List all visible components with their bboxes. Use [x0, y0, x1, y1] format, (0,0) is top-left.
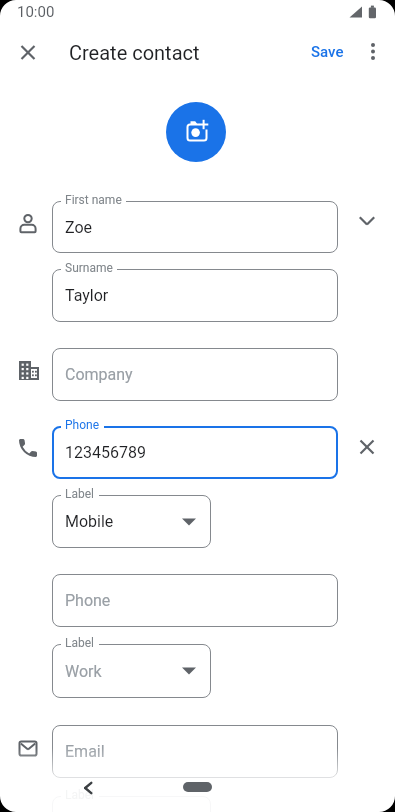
button[interactable]: Work [52, 644, 211, 698]
staticText: Label [65, 788, 95, 802]
button[interactable]: 123456789 [52, 426, 338, 479]
staticText: Work [65, 662, 102, 681]
staticText: Phone [65, 591, 111, 610]
button[interactable] [166, 102, 226, 162]
button[interactable]: Email [52, 725, 338, 778]
button[interactable]: Phone [52, 574, 338, 627]
staticText: Label [65, 487, 95, 501]
button[interactable] [8, 32, 48, 72]
staticText: Label [65, 636, 95, 650]
staticText: Taylor [65, 286, 109, 305]
staticText: Zoe [65, 218, 93, 237]
staticText: First name [65, 193, 122, 207]
staticText: Surname [65, 261, 113, 275]
staticText: 10:00 [17, 3, 55, 21]
staticText: Email [65, 742, 105, 761]
button[interactable] [347, 201, 387, 241]
button[interactable]: Taylor [52, 269, 338, 322]
button[interactable]: Company [52, 348, 338, 401]
button[interactable] [347, 427, 387, 467]
staticText: 123456789 [65, 443, 146, 462]
staticText: Mobile [65, 512, 114, 531]
button[interactable] [183, 782, 212, 792]
button[interactable] [357, 36, 389, 68]
button[interactable]: Zoe [52, 201, 338, 253]
staticText: Company [65, 365, 133, 384]
button[interactable] [70, 770, 106, 806]
staticText: Phone [65, 418, 100, 432]
button[interactable]: Save [303, 36, 351, 68]
button[interactable]: Mobile [52, 495, 211, 548]
staticText: Create contact [69, 41, 200, 64]
staticText: Save [311, 43, 344, 61]
